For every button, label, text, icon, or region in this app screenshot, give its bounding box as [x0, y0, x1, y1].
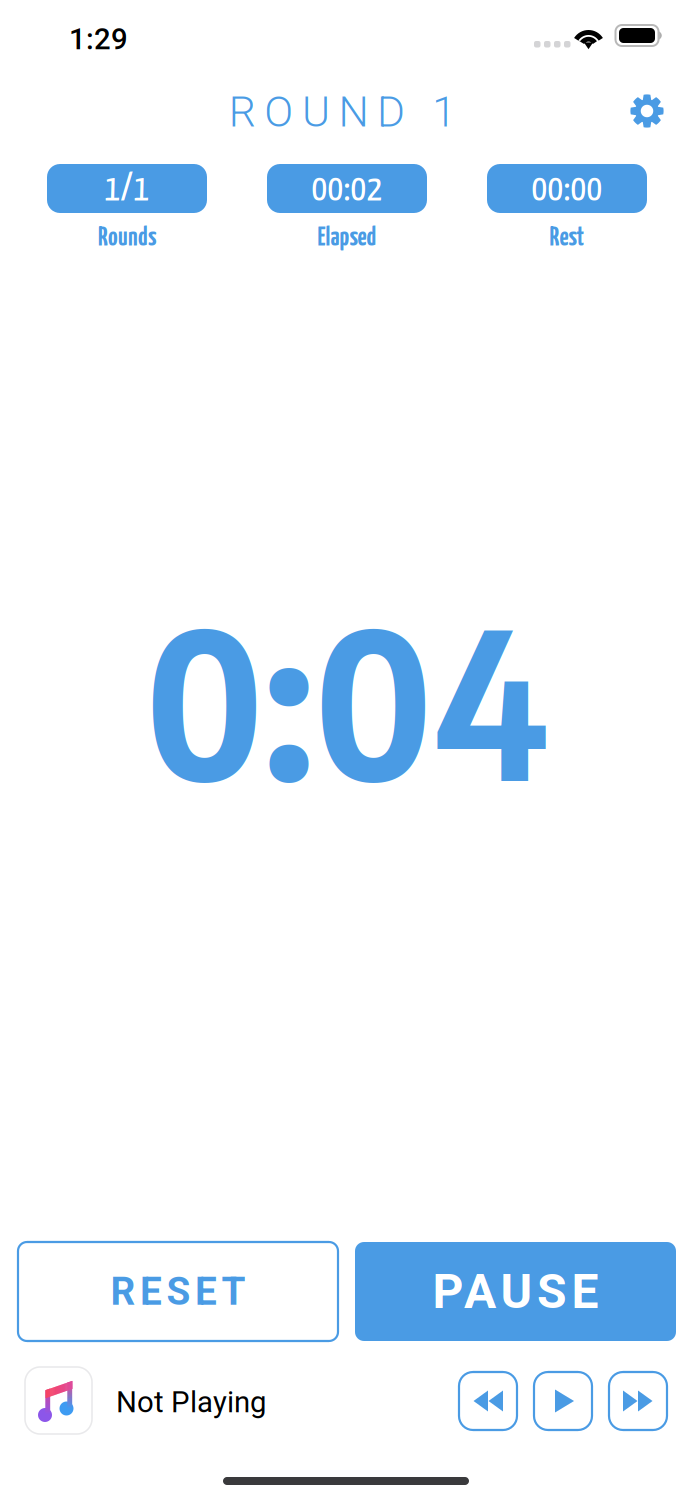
- staticText: 1/1: [104, 173, 149, 208]
- staticText: ROUND 1: [229, 87, 456, 137]
- staticText: 0:04: [145, 571, 548, 826]
- button[interactable]: Settings: [630, 94, 664, 128]
- staticText: RESET: [110, 1269, 245, 1314]
- button[interactable]: PAUSE: [355, 1242, 676, 1341]
- button[interactable]: Apple Music: [25, 1367, 92, 1434]
- button[interactable]: Fast forward: [609, 1372, 667, 1430]
- staticText: Rounds: [98, 226, 156, 251]
- staticText: Not Playing: [116, 1385, 266, 1419]
- staticText: Rest: [549, 226, 584, 251]
- staticText: 1:29: [69, 22, 128, 56]
- staticText: 00:02: [311, 173, 382, 208]
- staticText: PAUSE: [432, 1263, 598, 1320]
- button[interactable]: Rewind: [459, 1372, 517, 1430]
- staticText: 00:00: [531, 173, 602, 208]
- button[interactable]: RESET: [18, 1242, 338, 1341]
- staticText: Elapsed: [317, 226, 376, 251]
- button[interactable]: Play: [534, 1372, 592, 1430]
